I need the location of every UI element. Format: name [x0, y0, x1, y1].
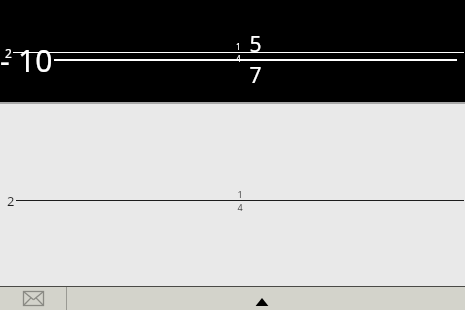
staticText: 1: [237, 188, 243, 200]
staticText: 1: [236, 41, 241, 52]
button[interactable]: Send by email: [0, 287, 66, 310]
staticText: 2: [5, 45, 12, 61]
staticText: 2: [7, 192, 15, 210]
staticText: 4: [237, 201, 243, 213]
staticText: 4: [236, 53, 241, 64]
staticText: -: [0, 40, 18, 81]
staticText: 5: [249, 30, 262, 59]
button[interactable]: Expand: [67, 287, 457, 310]
button[interactable]: 2: [0, 0, 465, 102]
staticText: 10: [18, 40, 53, 81]
staticText: 7: [249, 61, 262, 90]
